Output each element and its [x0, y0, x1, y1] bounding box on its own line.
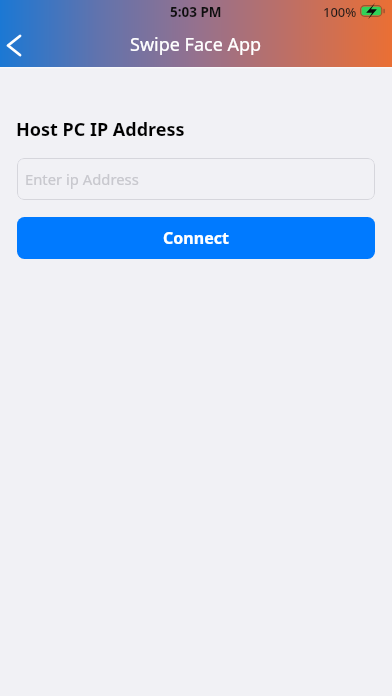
staticText: 100% [323, 3, 357, 21]
staticText: Swipe Face App [130, 32, 262, 57]
staticText: Connect [163, 227, 229, 249]
button[interactable]: Back [0, 25, 38, 65]
button[interactable]: Enter ip Address [17, 158, 375, 200]
staticText: Host PC IP Address [16, 117, 185, 142]
button[interactable]: Connect [17, 217, 375, 259]
staticText: Enter ip Address [25, 169, 139, 189]
staticText: 5:03 PM [170, 3, 222, 21]
